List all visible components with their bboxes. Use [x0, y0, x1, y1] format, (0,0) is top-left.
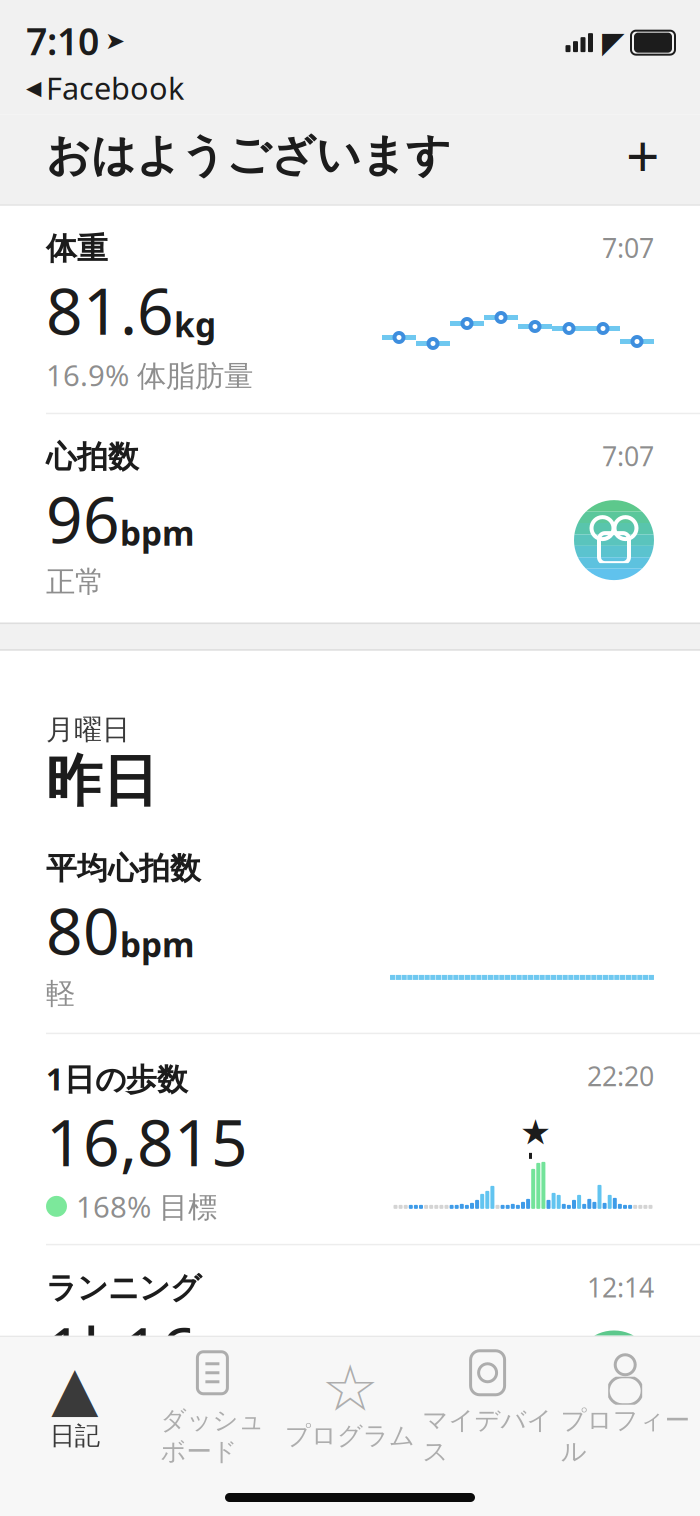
staticText: 体重 [46, 230, 108, 267]
staticText: 96 [46, 476, 120, 561]
staticText: 月曜日 [46, 713, 130, 747]
staticText: ☆ [321, 1352, 378, 1425]
staticText: 81.6 [46, 267, 174, 352]
staticText: kg [174, 302, 216, 346]
button[interactable]: 平均心拍数 [0, 826, 700, 1034]
button[interactable]: 追加 [616, 128, 670, 182]
button[interactable]: プロフィール [556, 1337, 694, 1477]
staticText: Facebook [46, 68, 184, 108]
button[interactable]: ☆ [281, 1352, 419, 1461]
staticText: 昨日 [46, 747, 158, 816]
staticText: bpm [120, 511, 195, 555]
staticText: ◤ [602, 26, 625, 59]
staticText: 16,815 [46, 1099, 248, 1184]
button[interactable]: ランニング [0, 1245, 700, 1454]
staticText: 22:20 [587, 1058, 654, 1094]
button[interactable]: 1日の歩数 [0, 1034, 700, 1245]
button[interactable]: マイデバイス [419, 1337, 556, 1477]
staticText: 日記 [50, 1420, 100, 1451]
staticText: ★ [520, 1112, 551, 1152]
staticText: プロフィール [561, 1405, 690, 1467]
staticText: プログラム [285, 1420, 415, 1451]
button[interactable]: ◀ [26, 68, 184, 108]
staticText: 12:14 [587, 1269, 654, 1305]
staticText: 7:10 [26, 16, 99, 66]
staticText: bpm [120, 922, 195, 966]
staticText: ランニング [46, 1269, 201, 1307]
staticText: 681 kcal [46, 1395, 159, 1434]
button[interactable]: 心拍数 [0, 414, 700, 623]
button[interactable]: ▲ [6, 1352, 144, 1461]
staticText: 80 [46, 887, 120, 972]
staticText: 正常 [46, 564, 104, 600]
staticText: 平均心拍数 [46, 850, 201, 887]
staticText: おはようございます [46, 128, 451, 182]
staticText: 168% 目標 [76, 1187, 217, 1226]
staticText: ◀ [26, 77, 41, 99]
button[interactable]: 体重 [0, 206, 700, 414]
staticText: 7:07 [602, 438, 654, 474]
staticText: 軽 [46, 975, 75, 1011]
staticText: ダッシュボード [160, 1405, 264, 1467]
staticText: 1日の歩数 [46, 1058, 188, 1099]
staticText: 1h16 [46, 1307, 197, 1392]
staticText: 心拍数 [46, 438, 139, 476]
staticText: ➤ [105, 27, 125, 54]
staticText: + [626, 116, 660, 194]
staticText: マイデバイス [423, 1405, 553, 1467]
staticText: 7:07 [602, 230, 654, 265]
staticText: 16.9% 体脂肪量 [46, 355, 253, 394]
button[interactable]: ダッシュボード [144, 1337, 281, 1477]
staticText: ▲ [51, 1353, 98, 1423]
